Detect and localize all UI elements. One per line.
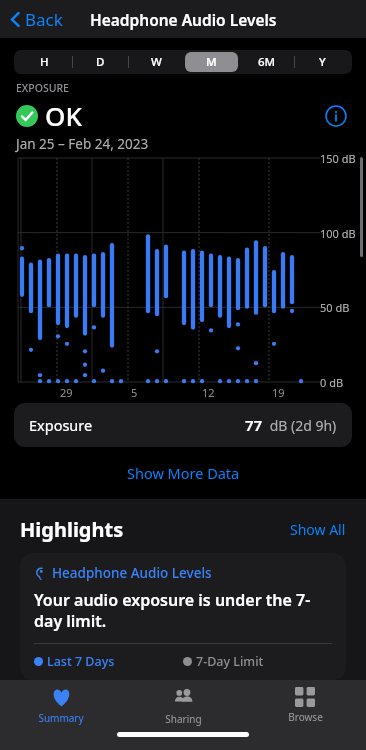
staticText: W (151, 54, 162, 70)
staticText: Show All (290, 520, 346, 539)
staticText: M (206, 54, 217, 70)
button[interactable]: Exposure (14, 403, 352, 447)
staticText: Sharing (165, 712, 202, 726)
button[interactable]: 6M (240, 52, 293, 72)
staticText: dB (2d 9h) (266, 416, 337, 435)
staticText: 5 (131, 385, 138, 400)
button[interactable]: Y (296, 52, 349, 72)
staticText: 0 dB (320, 375, 344, 390)
staticText: Jan 25 – Feb 24, 2023 (16, 135, 149, 153)
button[interactable]: H (17, 52, 71, 72)
staticText: D (96, 54, 105, 70)
button[interactable]: Headphone Audio Levels (20, 553, 346, 680)
staticText: Headphone Audio Levels (90, 9, 277, 30)
staticText: Y (319, 54, 326, 70)
button[interactable]: Sharing (122, 680, 244, 728)
staticText: Back (25, 8, 63, 31)
staticText: 77 (245, 415, 263, 435)
button[interactable]: D (74, 52, 127, 72)
staticText: H (40, 54, 49, 70)
staticText: 29 (60, 385, 73, 400)
button[interactable]: M (185, 52, 238, 72)
staticText: OK (45, 98, 82, 133)
staticText: Summary (38, 711, 84, 725)
staticText: Highlights (20, 516, 124, 543)
staticText: 12 (202, 385, 215, 400)
staticText: 50 dB (320, 300, 350, 315)
button[interactable]: Show All (286, 516, 350, 543)
staticText: Show More Data (127, 463, 240, 483)
staticText: Your audio exposure is under the 7-day l… (34, 589, 332, 632)
staticText: 6M (258, 54, 276, 70)
staticText: 7-Day Limit (196, 653, 264, 670)
button[interactable]: W (130, 52, 183, 72)
button[interactable]: About headphone audio levels (322, 102, 350, 130)
button[interactable]: Back (0, 4, 71, 35)
staticText: Browse (288, 710, 323, 724)
staticText: 100 dB (320, 226, 356, 241)
staticText: Headphone Audio Levels (52, 564, 212, 582)
button[interactable]: Summary (0, 680, 122, 728)
staticText: 19 (272, 385, 285, 400)
button[interactable]: Browse (244, 680, 366, 728)
button[interactable]: Show More Data (111, 460, 256, 486)
staticText: EXPOSURE (16, 81, 69, 95)
staticText: 150 dB (320, 151, 356, 166)
staticText: Exposure (29, 415, 93, 435)
staticText: Last 7 Days (47, 653, 115, 670)
